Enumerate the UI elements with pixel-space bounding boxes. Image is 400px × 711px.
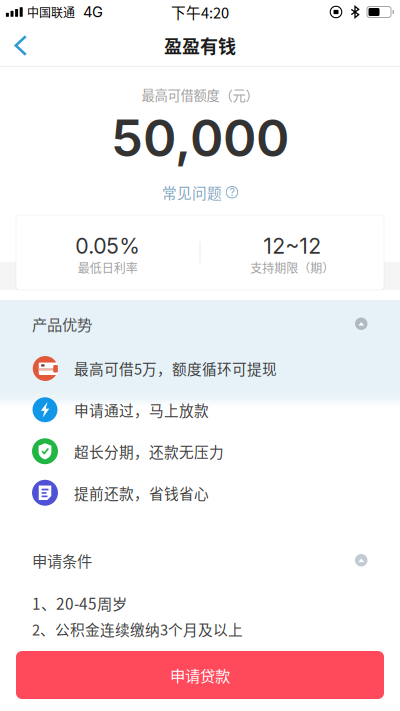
- staticText: 0.05%: [75, 233, 140, 259]
- staticText: 最高可借额度（元）: [141, 85, 258, 104]
- button[interactable]: Collapse section: [346, 308, 376, 339]
- staticText: 申请条件: [32, 549, 92, 571]
- button[interactable]: Back: [0, 24, 43, 67]
- staticText: 1、20-45周岁: [32, 592, 127, 614]
- staticText: 50,000: [111, 107, 289, 169]
- button[interactable]: 申请贷款: [16, 651, 384, 699]
- staticText: 产品优势: [32, 313, 92, 335]
- staticText: 最高可借5万，额度循环可提现: [74, 358, 277, 379]
- staticText: 盈盈有钱: [164, 32, 236, 59]
- staticText: ?: [229, 186, 234, 199]
- button[interactable]: Collapse section: [346, 545, 376, 575]
- staticText: 超长分期，还款无压力: [74, 441, 224, 462]
- staticText: 申请通过，马上放款: [74, 399, 209, 420]
- staticText: 支持期限（期）: [250, 259, 334, 276]
- staticText: 常见问题: [162, 182, 222, 203]
- staticText: 提前还款，省钱省心: [74, 482, 209, 503]
- staticText: 申请贷款: [170, 664, 230, 686]
- staticText: 最低日利率: [78, 259, 138, 276]
- button[interactable]: 常见问题: [152, 169, 248, 208]
- staticText: 4G: [83, 3, 103, 21]
- staticText: 下午4:20: [171, 1, 229, 23]
- staticText: 12~12: [263, 233, 321, 259]
- staticText: 2、公积金连续缴纳3个月及以上: [32, 618, 243, 640]
- staticText: 中国联通: [27, 3, 75, 21]
